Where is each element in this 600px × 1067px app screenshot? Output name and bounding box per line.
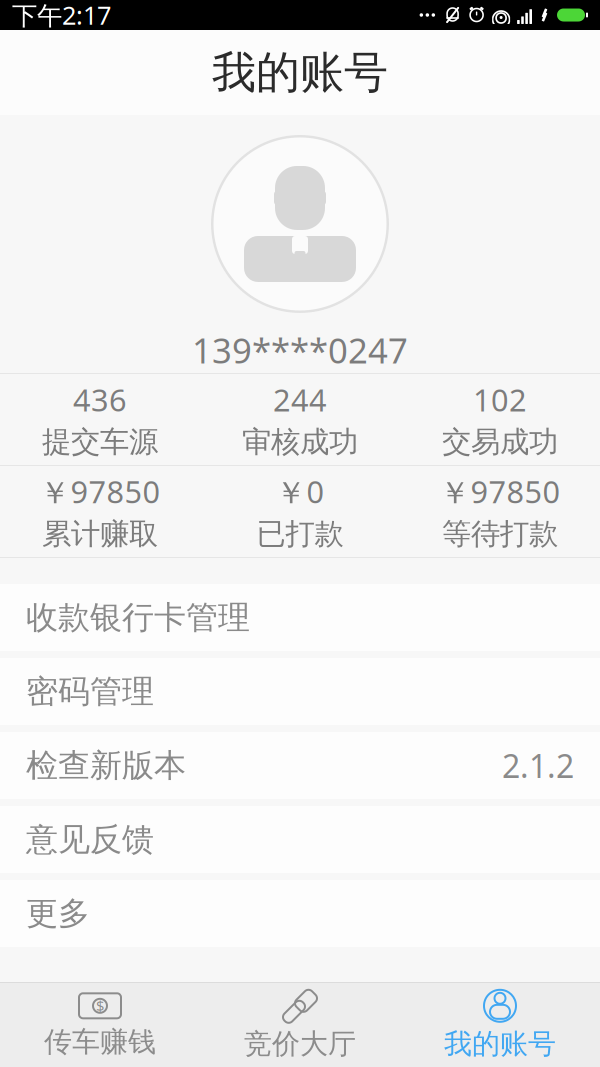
staticText: 244 bbox=[273, 379, 327, 420]
button[interactable]: 我的账号 bbox=[400, 983, 600, 1067]
staticText: 提交车源 bbox=[42, 424, 158, 460]
staticText: 密码管理 bbox=[26, 672, 154, 711]
staticText: 已打款 bbox=[256, 516, 343, 552]
staticText: $ bbox=[96, 996, 104, 1016]
button[interactable]: $ bbox=[0, 983, 200, 1067]
staticText: 102 bbox=[473, 379, 527, 420]
staticText: 收款银行卡管理 bbox=[26, 598, 250, 637]
staticText: ￥97850 bbox=[39, 471, 160, 512]
staticText: 下午2:17 bbox=[12, 0, 111, 32]
staticText: 我的账号 bbox=[444, 1027, 556, 1061]
staticText: ￥0 bbox=[275, 471, 324, 512]
staticText: 我的账号 bbox=[212, 45, 388, 99]
staticText: 审核成功 bbox=[242, 424, 358, 460]
staticText: ￥97850 bbox=[439, 471, 560, 512]
button[interactable]: 检查新版本 bbox=[0, 732, 600, 799]
button[interactable]: 更多 bbox=[0, 880, 600, 947]
staticText: 检查新版本 bbox=[26, 746, 186, 785]
button[interactable]: 密码管理 bbox=[0, 658, 600, 725]
staticText: 竞价大厅 bbox=[244, 1027, 356, 1061]
button[interactable]: 收款银行卡管理 bbox=[0, 584, 600, 651]
staticText: 意见反馈 bbox=[26, 820, 154, 859]
button[interactable]: 意见反馈 bbox=[0, 806, 600, 873]
staticText: 交易成功 bbox=[442, 424, 558, 460]
staticText: 139****0247 bbox=[192, 327, 408, 373]
staticText: 2.1.2 bbox=[502, 744, 574, 787]
staticText: 传车赚钱 bbox=[44, 1025, 156, 1059]
staticText: 436 bbox=[73, 379, 127, 420]
staticText: 等待打款 bbox=[442, 516, 558, 552]
staticText: 更多 bbox=[26, 894, 90, 933]
staticText: 累计赚取 bbox=[42, 516, 158, 552]
button[interactable]: 竞价大厅 bbox=[200, 983, 400, 1067]
